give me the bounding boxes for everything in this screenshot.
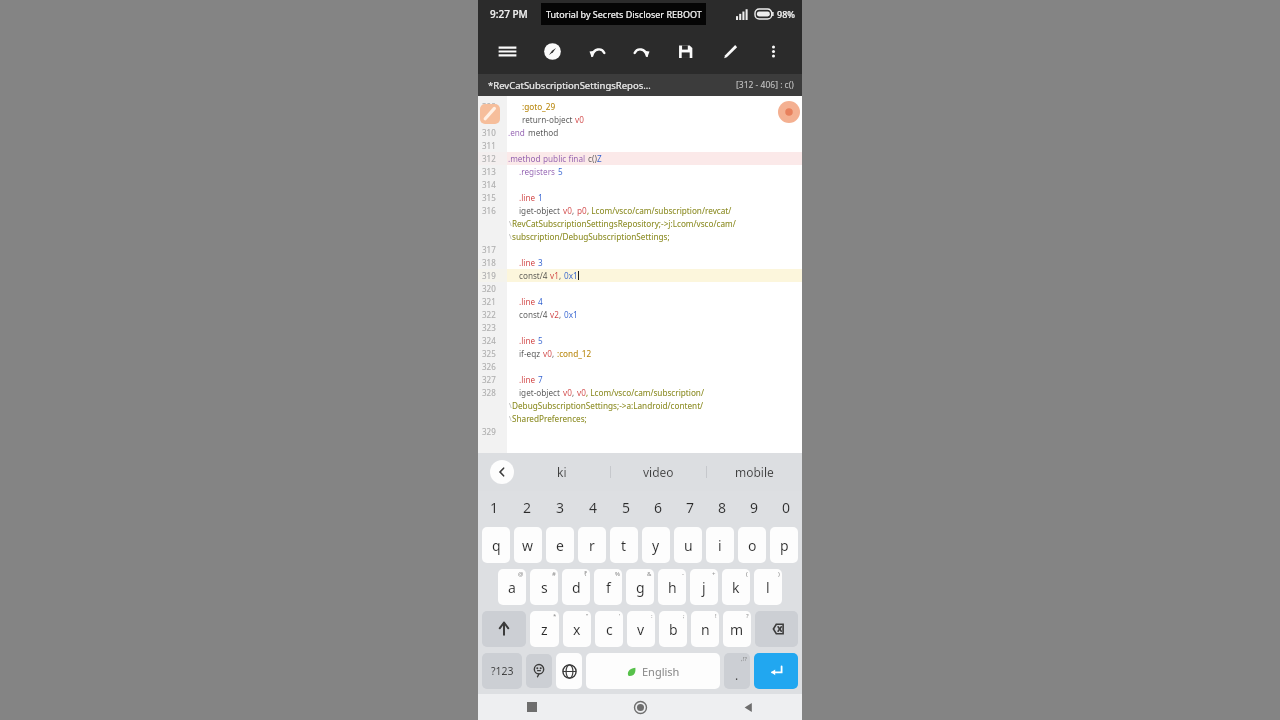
button[interactable]: 9: [738, 491, 770, 524]
staticText: 328: [482, 387, 496, 398]
button[interactable]: Recents: [478, 694, 586, 720]
button[interactable]: x: [563, 611, 591, 647]
button[interactable]: .: [724, 653, 750, 689]
button[interactable]: n: [691, 611, 719, 647]
button[interactable]: m: [723, 611, 751, 647]
button[interactable]: Navigate: [537, 36, 567, 66]
staticText: i: [718, 536, 722, 555]
staticText: ?: [746, 612, 749, 620]
button[interactable]: p: [770, 527, 798, 563]
button[interactable]: f: [594, 569, 622, 605]
button[interactable]: k: [722, 569, 750, 605]
button[interactable]: Previous suggestions: [490, 460, 514, 484]
button[interactable]: b: [659, 611, 687, 647]
button[interactable]: r: [578, 527, 606, 563]
staticText: #: [552, 570, 556, 578]
staticText: ": [586, 612, 589, 620]
button[interactable]: ki: [514, 453, 610, 491]
button[interactable]: Shift: [482, 611, 526, 647]
staticText: v0: [563, 387, 572, 398]
staticText: [312 - 406] : c(): [736, 79, 794, 91]
button[interactable]: mobile: [706, 453, 802, 491]
button[interactable]: i: [706, 527, 734, 563]
staticText: @: [518, 570, 524, 578]
button[interactable]: Emoji: [526, 654, 552, 688]
staticText: 5: [622, 498, 631, 517]
staticText: f: [606, 578, 611, 597]
button[interactable]: Redo: [626, 36, 656, 66]
button[interactable]: y: [642, 527, 670, 563]
staticText: 310: [482, 127, 496, 138]
staticText: *: [553, 612, 557, 620]
button[interactable]: More options: [758, 36, 788, 66]
button[interactable]: Backspace: [755, 611, 798, 647]
button[interactable]: Back: [694, 694, 802, 720]
button[interactable]: Selection handle: [480, 104, 500, 124]
button[interactable]: w: [514, 527, 542, 563]
button[interactable]: Menu: [492, 36, 522, 66]
button[interactable]: v: [627, 611, 655, 647]
button[interactable]: Home: [586, 694, 694, 720]
button[interactable]: Change language: [556, 653, 582, 689]
staticText: .method: [508, 153, 543, 164]
button[interactable]: 5: [610, 491, 642, 524]
staticText: s: [541, 578, 548, 597]
staticText: 4: [589, 498, 598, 517]
staticText: 3: [538, 257, 543, 268]
staticText: return-object: [522, 114, 575, 125]
button[interactable]: s: [530, 569, 558, 605]
staticText: \: [509, 219, 512, 229]
button[interactable]: 8: [706, 491, 738, 524]
button[interactable]: 7: [674, 491, 706, 524]
button[interactable]: d: [562, 569, 590, 605]
button[interactable]: Edit: [714, 36, 744, 66]
button[interactable]: 2: [511, 491, 544, 524]
staticText: v: [637, 620, 645, 639]
staticText: :goto_29: [522, 101, 556, 112]
button[interactable]: 6: [642, 491, 674, 524]
staticText: c(): [588, 153, 597, 164]
staticText: 1: [490, 498, 499, 517]
button[interactable]: g: [626, 569, 654, 605]
button[interactable]: ?123: [482, 653, 522, 689]
staticText: 316: [482, 205, 496, 216]
staticText: , Lcom/vsco/cam/subscription/: [586, 387, 704, 398]
staticText: v0: [575, 114, 584, 125]
button[interactable]: j: [690, 569, 718, 605]
button[interactable]: l: [754, 569, 782, 605]
button[interactable]: 4: [577, 491, 610, 524]
staticText: e: [556, 536, 564, 555]
staticText: \: [509, 401, 512, 411]
staticText: 308: [482, 101, 496, 112]
button[interactable]: z: [530, 611, 559, 647]
button[interactable]: c: [595, 611, 623, 647]
staticText: z: [541, 620, 548, 639]
button[interactable]: e: [546, 527, 574, 563]
button[interactable]: Scroll: [778, 101, 800, 123]
button[interactable]: a: [498, 569, 526, 605]
button[interactable]: Enter: [754, 653, 798, 689]
staticText: .line: [519, 257, 538, 268]
button[interactable]: Save: [670, 36, 700, 66]
staticText: ki: [557, 464, 567, 480]
button[interactable]: t: [610, 527, 638, 563]
button[interactable]: 0: [770, 491, 802, 524]
staticText: const/4: [519, 270, 550, 281]
staticText: v0: [577, 387, 586, 398]
button[interactable]: u: [674, 527, 702, 563]
staticText: 312: [482, 153, 496, 164]
button[interactable]: 1: [478, 491, 511, 524]
staticText: q: [492, 536, 501, 555]
staticText: n: [701, 620, 710, 639]
button[interactable]: *RevCatSubscriptionSettingsRepos…: [478, 74, 802, 96]
button[interactable]: Undo: [582, 36, 612, 66]
staticText: iget-object: [519, 387, 563, 398]
button[interactable]: q: [482, 527, 510, 563]
button[interactable]: h: [658, 569, 686, 605]
button[interactable]: video: [610, 453, 706, 491]
button[interactable]: o: [738, 527, 766, 563]
button[interactable]: 3: [544, 491, 577, 524]
staticText: ,: [559, 270, 564, 281]
staticText: 8: [718, 498, 727, 517]
button[interactable]: English: [586, 653, 720, 689]
